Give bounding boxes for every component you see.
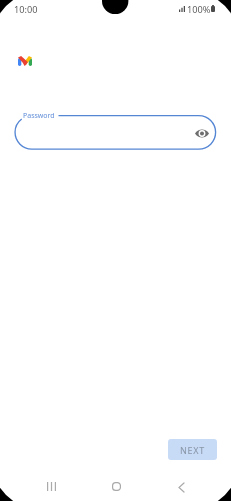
staticText: 100% [187,3,211,16]
button[interactable]: NEXT [168,439,217,460]
button[interactable]: Home [102,472,131,501]
staticText: 10:00 [14,3,38,16]
button[interactable]: Recents [37,472,66,501]
button[interactable]: Back [167,473,196,501]
staticText: Password [23,111,55,121]
button[interactable]: Show password [192,123,212,143]
staticText: NEXT [180,444,205,456]
